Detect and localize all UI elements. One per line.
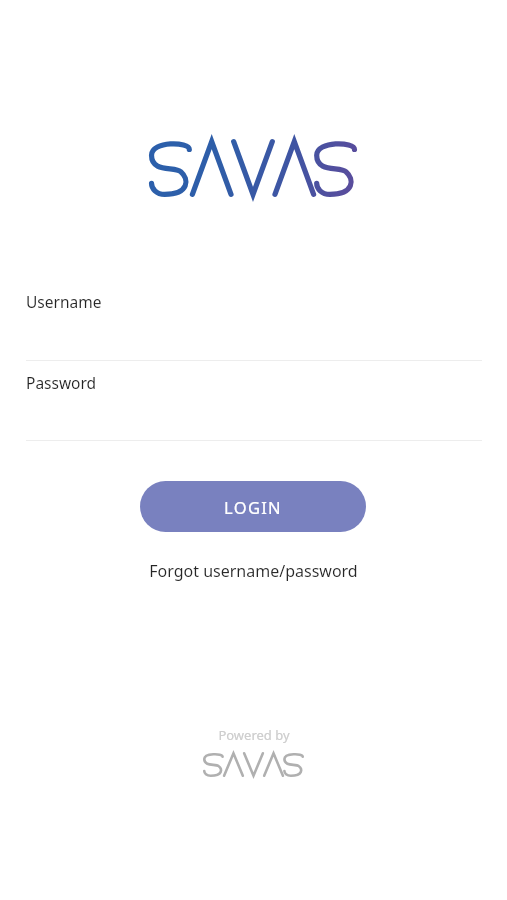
button[interactable]: Password: [26, 361, 482, 441]
button[interactable]: Username: [26, 270, 482, 361]
staticText: Forgot username/password: [149, 560, 358, 582]
staticText: LOGIN: [224, 496, 282, 518]
staticText: Powered by: [218, 726, 290, 744]
staticText: Password: [26, 372, 97, 393]
staticText: Username: [26, 291, 102, 312]
button[interactable]: Forgot username/password: [120, 555, 387, 586]
button[interactable]: LOGIN: [140, 481, 366, 532]
